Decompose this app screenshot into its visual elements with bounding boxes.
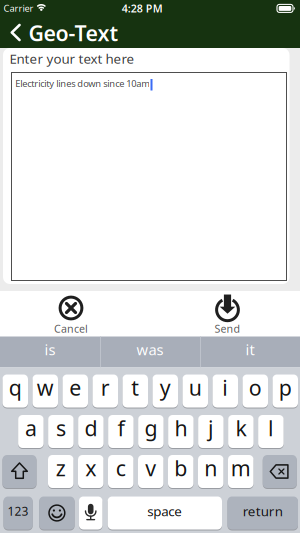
button[interactable]: return (227, 496, 298, 529)
staticText: i (222, 373, 228, 402)
button[interactable]: z (48, 455, 73, 488)
button[interactable]: d (78, 415, 104, 448)
staticText: a (25, 414, 37, 442)
staticText: h (174, 414, 187, 442)
button[interactable]: x (78, 455, 103, 488)
button[interactable]: g (138, 415, 164, 448)
staticText: x (85, 454, 96, 482)
staticText: n (204, 454, 217, 482)
staticText: d (84, 414, 97, 442)
staticText: t (131, 373, 139, 402)
button[interactable] (11, 72, 287, 281)
staticText: Enter your text here (9, 50, 134, 67)
staticText: l (268, 414, 274, 442)
staticText: it (245, 340, 254, 359)
button[interactable]: p (272, 374, 298, 407)
button[interactable]: h (168, 415, 194, 448)
staticText: Cancel (54, 321, 88, 336)
button[interactable]: u (182, 374, 208, 407)
button[interactable]: s (48, 415, 74, 448)
staticText: y (160, 373, 171, 402)
staticText: u (189, 373, 202, 402)
staticText: Electricity lines down since 10am (15, 77, 150, 89)
button[interactable]: was (100, 336, 199, 367)
staticText: 4:28 PM (122, 1, 163, 15)
staticText: f (117, 414, 124, 442)
staticText: v (145, 454, 156, 482)
button[interactable]: k (228, 415, 254, 448)
staticText: was (136, 340, 163, 359)
button[interactable] (39, 496, 75, 529)
staticText: o (249, 373, 262, 402)
staticText: e (69, 373, 81, 402)
button[interactable]: e (62, 374, 88, 407)
button[interactable]: 123 (3, 496, 33, 529)
staticText: c (116, 454, 126, 482)
staticText: w (37, 373, 54, 402)
staticText: space (147, 502, 182, 520)
button[interactable] (79, 496, 102, 529)
staticText: m (231, 454, 251, 482)
button[interactable]: b (168, 455, 193, 488)
staticText: z (56, 454, 66, 482)
button[interactable]: r (92, 374, 118, 407)
button[interactable]: o (242, 374, 268, 407)
staticText: j (208, 414, 214, 442)
button[interactable]: j (198, 415, 224, 448)
staticText: g (144, 414, 157, 442)
staticText: q (9, 373, 22, 402)
staticText: k (235, 414, 246, 442)
button[interactable] (2, 455, 36, 488)
button[interactable]: i (212, 374, 238, 407)
button[interactable]: a (18, 415, 44, 448)
staticText: p (279, 373, 292, 402)
staticText: Carrier (3, 2, 33, 14)
button[interactable]: v (138, 455, 163, 488)
staticText: return (243, 502, 283, 520)
button[interactable]: q (2, 374, 28, 407)
staticText: Geo-Text (29, 19, 119, 47)
button[interactable]: f (108, 415, 134, 448)
button[interactable] (0, 0, 300, 533)
button[interactable]: Send (196, 292, 258, 336)
button[interactable]: n (198, 455, 223, 488)
button[interactable] (263, 455, 297, 488)
button[interactable]: l (258, 415, 284, 448)
button[interactable]: is (0, 336, 99, 367)
button[interactable]: t (122, 374, 148, 407)
button[interactable]: c (108, 455, 133, 488)
button[interactable]: it (200, 336, 299, 367)
button[interactable]: Cancel (40, 292, 102, 336)
staticText: Send (214, 321, 240, 336)
staticText: s (56, 414, 66, 442)
button[interactable]: y (152, 374, 178, 407)
button[interactable]: m (228, 455, 253, 488)
staticText: b (174, 454, 187, 482)
button[interactable]: w (32, 374, 58, 407)
staticText: is (44, 340, 55, 359)
staticText: r (101, 373, 110, 402)
button[interactable]: space (108, 496, 222, 529)
staticText: 123 (8, 503, 29, 519)
